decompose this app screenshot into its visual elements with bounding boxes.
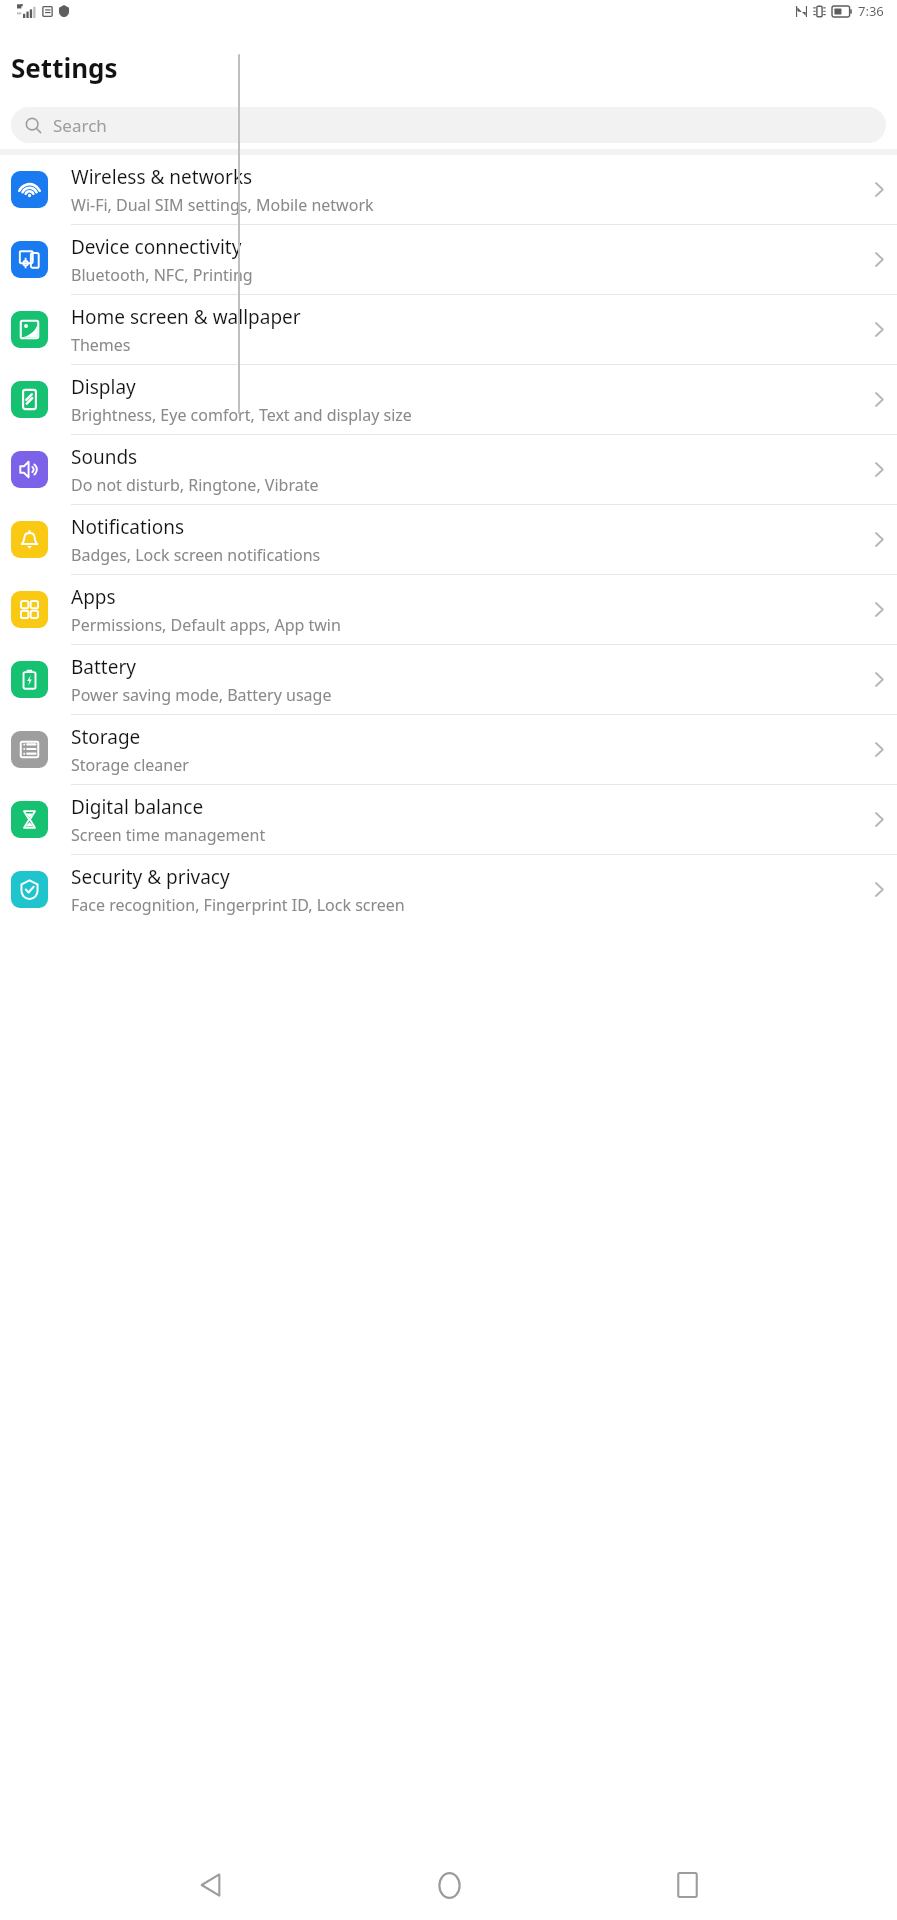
button[interactable]: Apps: [0, 575, 897, 645]
staticText: Brightness, Eye comfort, Text and displa…: [71, 404, 412, 426]
staticText: Face recognition, Fingerprint ID, Lock s…: [71, 894, 405, 916]
staticText: Screen time management: [71, 824, 266, 846]
staticText: Sounds: [71, 444, 138, 470]
staticText: 7:36: [858, 2, 884, 20]
staticText: Permissions, Default apps, App twin: [71, 614, 341, 636]
button[interactable]: Battery: [0, 645, 897, 715]
staticText: Search: [53, 114, 107, 137]
staticText: Storage: [71, 724, 141, 750]
staticText: Do not disturb, Ringtone, Vibrate: [71, 474, 319, 496]
staticText: Wireless & networks: [71, 164, 253, 190]
staticText: Notifications: [71, 514, 185, 540]
staticText: Digital balance: [71, 794, 204, 820]
button[interactable]: Back: [182, 1857, 238, 1913]
button[interactable]: Home: [421, 1857, 477, 1913]
staticText: Home screen & wallpaper: [71, 304, 301, 330]
staticText: Device connectivity: [71, 234, 242, 260]
button[interactable]: Wireless & networks: [0, 155, 897, 225]
button[interactable]: Digital balance: [0, 785, 897, 855]
button[interactable]: Device connectivity: [0, 225, 897, 295]
staticText: Bluetooth, NFC, Printing: [71, 264, 253, 286]
button[interactable]: Notifications: [0, 505, 897, 575]
staticText: Display: [71, 374, 136, 400]
staticText: Security & privacy: [71, 864, 230, 890]
button[interactable]: Sounds: [0, 435, 897, 505]
staticText: Power saving mode, Battery usage: [71, 684, 332, 706]
staticText: Themes: [71, 334, 131, 356]
staticText: Wi-Fi, Dual SIM settings, Mobile network: [71, 194, 374, 216]
button[interactable]: Recent apps: [659, 1857, 715, 1913]
staticText: Apps: [71, 584, 116, 610]
button[interactable]: Search: [11, 107, 886, 143]
button[interactable]: Storage: [0, 715, 897, 785]
button[interactable]: Security & privacy: [0, 855, 897, 924]
staticText: Badges, Lock screen notifications: [71, 544, 321, 566]
staticText: Battery: [71, 654, 136, 680]
button[interactable]: Home screen & wallpaper: [0, 295, 897, 365]
staticText: Storage cleaner: [71, 754, 189, 776]
staticText: Settings: [11, 50, 118, 85]
button[interactable]: Display: [0, 365, 897, 435]
